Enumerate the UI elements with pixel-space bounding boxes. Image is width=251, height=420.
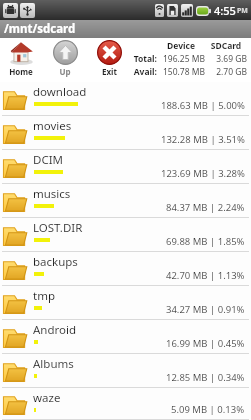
button[interactable]: DCIM [0,150,251,184]
staticText: Android [33,322,77,338]
staticText: tmp [33,288,55,304]
staticText: 150.78 MB [157,66,205,78]
staticText: 3.69 GB [205,53,247,65]
staticText: 34.27 MB | 0.91% [166,303,245,316]
staticText: Albums [33,356,74,372]
staticText: Home [9,66,33,77]
staticText: musics [33,186,71,202]
button[interactable]: download [0,82,251,116]
button[interactable]: movies [0,116,251,150]
staticText: 16.99 MB | 0.45% [166,337,245,350]
staticText: Total: [123,53,157,65]
staticText: 5.09 MB | 0.13% [171,403,245,416]
button[interactable]: Home [6,39,36,77]
staticText: Avail: [123,66,157,78]
staticText: Exit [102,66,117,77]
button[interactable]: waze [0,388,251,420]
staticText: SDCard [205,40,247,52]
staticText: 69.88 MB | 1.85% [166,235,245,248]
staticText: backups [33,254,78,270]
staticText: 12.85 MB | 0.34% [166,371,245,384]
button[interactable]: Albums [0,354,251,388]
staticText: movies [33,118,72,134]
staticText: 4:55 [214,3,236,18]
staticText: 132.28 MB | 3.51% [161,133,245,146]
staticText: LOST.DIR [33,220,83,236]
staticText: Up [59,66,71,77]
staticText: download [33,84,87,100]
staticText: 196.25 MB [157,53,205,65]
staticText: PM [237,6,248,16]
staticText: 2.70 GB [205,66,247,78]
staticText: waze [33,390,61,406]
staticText: 84.37 MB | 2.24% [166,201,245,214]
button[interactable]: Up [50,39,80,77]
button[interactable]: Exit [94,39,124,77]
staticText: Device [157,40,205,52]
staticText: 188.63 MB | 5.00% [161,99,245,112]
button[interactable]: musics [0,184,251,218]
staticText: /mnt/sdcard [4,21,76,37]
button[interactable]: backups [0,252,251,286]
button[interactable]: LOST.DIR [0,218,251,252]
staticText: DCIM [33,152,63,168]
staticText: 42.70 MB | 1.13% [166,269,245,282]
button[interactable]: Android [0,320,251,354]
button[interactable]: tmp [0,286,251,320]
staticText: 123.69 MB | 3.28% [161,167,245,180]
